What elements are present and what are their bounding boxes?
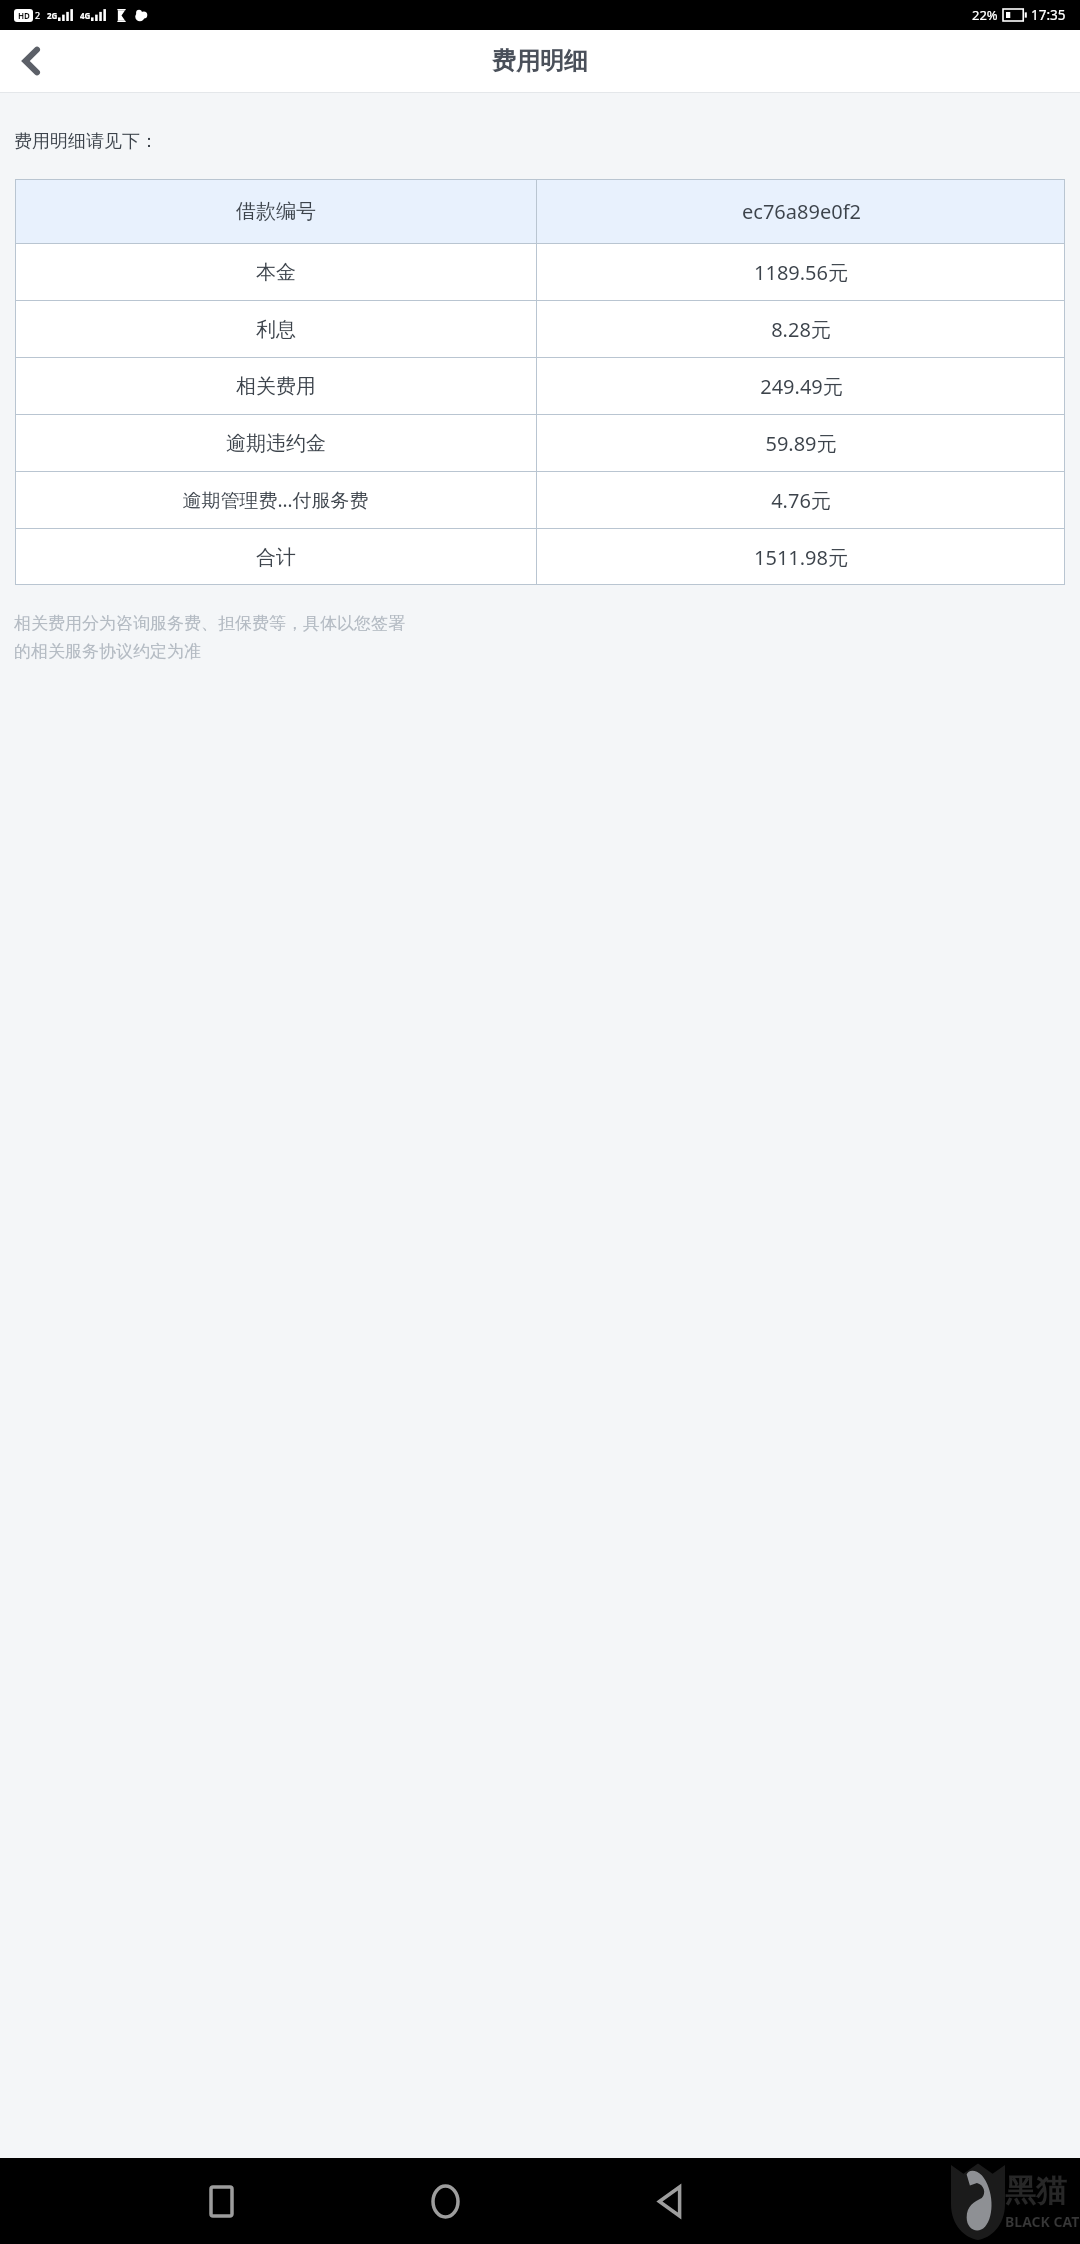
- staticText: 1511.98元: [754, 544, 848, 571]
- staticText: 黑猫: [1005, 2171, 1067, 2210]
- staticText: 借款编号: [236, 199, 316, 224]
- staticText: 相关费用分为咨询服务费、担保费等，具体以您签署 的相关服务协议约定为准: [14, 613, 405, 662]
- staticText: 17:35: [1031, 6, 1066, 24]
- button[interactable]: 返回: [0, 30, 62, 92]
- staticText: BLACK CAT: [1005, 2212, 1080, 2231]
- staticText: 59.89元: [765, 430, 837, 457]
- staticText: 逾期管理费…付服务费: [182, 487, 369, 513]
- staticText: 22%: [972, 6, 998, 24]
- staticText: 利息: [256, 317, 296, 342]
- button[interactable]: 最近任务: [192, 2172, 250, 2230]
- staticText: 合计: [256, 545, 296, 570]
- staticText: 4G: [80, 10, 91, 21]
- button[interactable]: 返回: [640, 2172, 698, 2230]
- staticText: 费用明细请见下：: [14, 130, 158, 153]
- staticText: 2G: [47, 10, 58, 21]
- staticText: 相关费用: [236, 374, 316, 399]
- staticText: 8.28元: [771, 316, 831, 343]
- staticText: 费用明细: [492, 46, 588, 76]
- staticText: 4.76元: [771, 487, 831, 514]
- staticText: HD: [18, 10, 30, 21]
- staticText: 249.49元: [760, 373, 843, 400]
- staticText: 1189.56元: [754, 259, 848, 286]
- staticText: ec76a89e0f2: [742, 198, 861, 225]
- staticText: 本金: [256, 260, 296, 285]
- staticText: 2: [35, 9, 41, 21]
- button[interactable]: 主屏幕: [416, 2172, 474, 2230]
- staticText: 逾期违约金: [226, 431, 326, 456]
